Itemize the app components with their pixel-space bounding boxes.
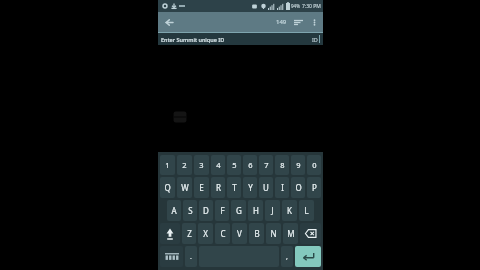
staticText: P xyxy=(312,182,317,193)
staticText: 7 xyxy=(264,160,269,170)
staticText: 9 xyxy=(296,160,301,170)
button[interactable]: Shift xyxy=(160,223,180,244)
button[interactable]: R xyxy=(211,177,225,198)
button[interactable]: H xyxy=(248,200,263,221)
staticText: R xyxy=(216,182,221,193)
staticText: , xyxy=(286,252,288,262)
button[interactable]: S xyxy=(183,200,197,221)
button[interactable]: 0 xyxy=(307,155,321,175)
staticText: 5 xyxy=(232,160,237,170)
button[interactable]: V xyxy=(232,223,247,244)
staticText: X xyxy=(203,228,208,239)
button[interactable]: M xyxy=(283,223,298,244)
staticText: Q xyxy=(164,182,171,193)
staticText: K xyxy=(287,205,292,216)
staticText: Y xyxy=(248,182,253,193)
button[interactable]: T xyxy=(227,177,241,198)
button[interactable]: E xyxy=(194,177,209,198)
button[interactable]: Y xyxy=(243,177,257,198)
staticText: D xyxy=(203,205,209,216)
button[interactable]: 2 xyxy=(177,155,192,175)
staticText: ID xyxy=(312,36,318,43)
button[interactable]: N xyxy=(266,223,281,244)
staticText: H xyxy=(253,205,259,216)
button[interactable]: U xyxy=(259,177,273,198)
staticText: 1 xyxy=(165,160,170,170)
staticText: T xyxy=(232,182,237,193)
button[interactable]: 8 xyxy=(275,155,289,175)
staticText: I xyxy=(281,182,284,193)
button[interactable]: Q xyxy=(160,177,175,198)
button[interactable]: 4 xyxy=(211,155,225,175)
staticText: M xyxy=(287,228,295,239)
staticText: 3 xyxy=(199,160,204,170)
staticText: 94% xyxy=(291,3,300,9)
staticText: S xyxy=(188,205,193,216)
button[interactable]: X xyxy=(198,223,213,244)
staticText: C xyxy=(220,228,226,239)
staticText: J xyxy=(271,205,274,216)
button[interactable]: 5 xyxy=(227,155,241,175)
button[interactable]: Z xyxy=(182,223,196,244)
staticText: O xyxy=(295,182,302,193)
staticText: B xyxy=(254,228,260,239)
button[interactable]: I xyxy=(275,177,289,198)
staticText: 6 xyxy=(248,160,253,170)
button[interactable]: C xyxy=(215,223,230,244)
staticText: Z xyxy=(187,228,192,239)
button[interactable]: , xyxy=(281,246,293,267)
button[interactable]: . xyxy=(185,246,197,267)
staticText: 8 xyxy=(280,160,285,170)
button[interactable]: 7 xyxy=(259,155,273,175)
staticText: W xyxy=(181,182,189,193)
button[interactable]: D xyxy=(199,200,213,221)
button[interactable]: Symbols xyxy=(160,246,183,267)
button[interactable]: O xyxy=(291,177,305,198)
button[interactable]: P xyxy=(307,177,321,198)
button[interactable]: 9 xyxy=(291,155,305,175)
button[interactable]: Sort xyxy=(290,14,306,30)
button[interactable]: A xyxy=(167,200,181,221)
staticText: N xyxy=(270,228,277,239)
staticText: F xyxy=(220,205,225,216)
button[interactable]: K xyxy=(282,200,297,221)
staticText: Enter Summit unique ID xyxy=(161,36,225,43)
button[interactable]: G xyxy=(231,200,246,221)
staticText: 149 xyxy=(276,18,287,26)
button[interactable]: W xyxy=(177,177,192,198)
staticText: V xyxy=(237,228,242,239)
button[interactable]: 1 xyxy=(160,155,175,175)
button[interactable]: J xyxy=(265,200,280,221)
button[interactable]: L xyxy=(299,200,314,221)
button[interactable]: Backspace xyxy=(300,223,321,244)
staticText: 4 xyxy=(216,160,221,170)
staticText: 2 xyxy=(182,160,187,170)
staticText: U xyxy=(263,182,269,193)
button[interactable]: More options xyxy=(306,14,322,30)
staticText: 7:30 PM xyxy=(302,3,321,10)
button[interactable]: F xyxy=(215,200,229,221)
staticText: 0 xyxy=(312,160,317,170)
button[interactable]: B xyxy=(249,223,264,244)
button[interactable]: 149 xyxy=(272,13,290,31)
button[interactable]: 3 xyxy=(194,155,209,175)
staticText: A xyxy=(171,205,177,216)
staticText: L xyxy=(304,205,309,216)
staticText: E xyxy=(199,182,204,193)
button[interactable]: Back xyxy=(160,13,178,31)
staticText: G xyxy=(236,205,242,216)
button[interactable]: 6 xyxy=(243,155,257,175)
staticText: . xyxy=(190,252,192,262)
button[interactable]: Enter xyxy=(295,246,321,267)
